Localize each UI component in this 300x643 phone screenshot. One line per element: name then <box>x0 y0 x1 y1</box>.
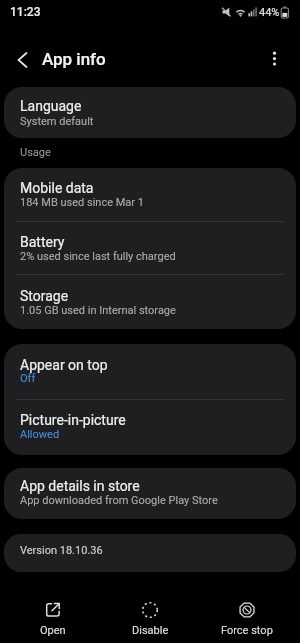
staticText: 11:23 <box>10 5 41 19</box>
button[interactable] <box>4 468 296 519</box>
staticText: Appear on top <box>20 357 108 373</box>
staticText: Mobile data <box>20 180 94 196</box>
button[interactable] <box>4 168 296 221</box>
staticText: 44% <box>259 6 280 19</box>
button[interactable]: Open <box>0 592 106 643</box>
staticText: Version 18.10.36 <box>20 544 103 557</box>
staticText: Force stop <box>221 624 273 637</box>
staticText: Language <box>20 98 82 114</box>
staticText: Storage <box>20 288 69 304</box>
button[interactable] <box>4 344 296 399</box>
button[interactable] <box>4 399 296 455</box>
staticText: 1.05 GB used in Internal storage <box>20 304 176 317</box>
staticText: App details in store <box>20 478 140 494</box>
staticText: App info <box>42 49 106 69</box>
button[interactable] <box>4 87 296 138</box>
button[interactable]: Disable <box>106 592 194 643</box>
staticText: System default <box>20 115 94 128</box>
button[interactable] <box>262 46 287 72</box>
staticText: Disable <box>132 624 169 637</box>
staticText: Open <box>40 624 66 637</box>
button[interactable] <box>4 221 296 275</box>
staticText: Usage <box>20 146 51 159</box>
button[interactable]: Force stop <box>194 592 300 643</box>
button[interactable] <box>10 47 36 73</box>
staticText: 184 MB used since Mar 1 <box>20 196 144 209</box>
staticText: 2% used since last fully charged <box>20 250 176 263</box>
button[interactable] <box>4 275 296 329</box>
staticText: Battery <box>20 234 65 250</box>
staticText: Off <box>20 372 36 385</box>
staticText: Picture-in-picture <box>20 412 126 428</box>
staticText: Allowed <box>20 428 60 441</box>
staticText: App downloaded from Google Play Store <box>20 494 218 507</box>
